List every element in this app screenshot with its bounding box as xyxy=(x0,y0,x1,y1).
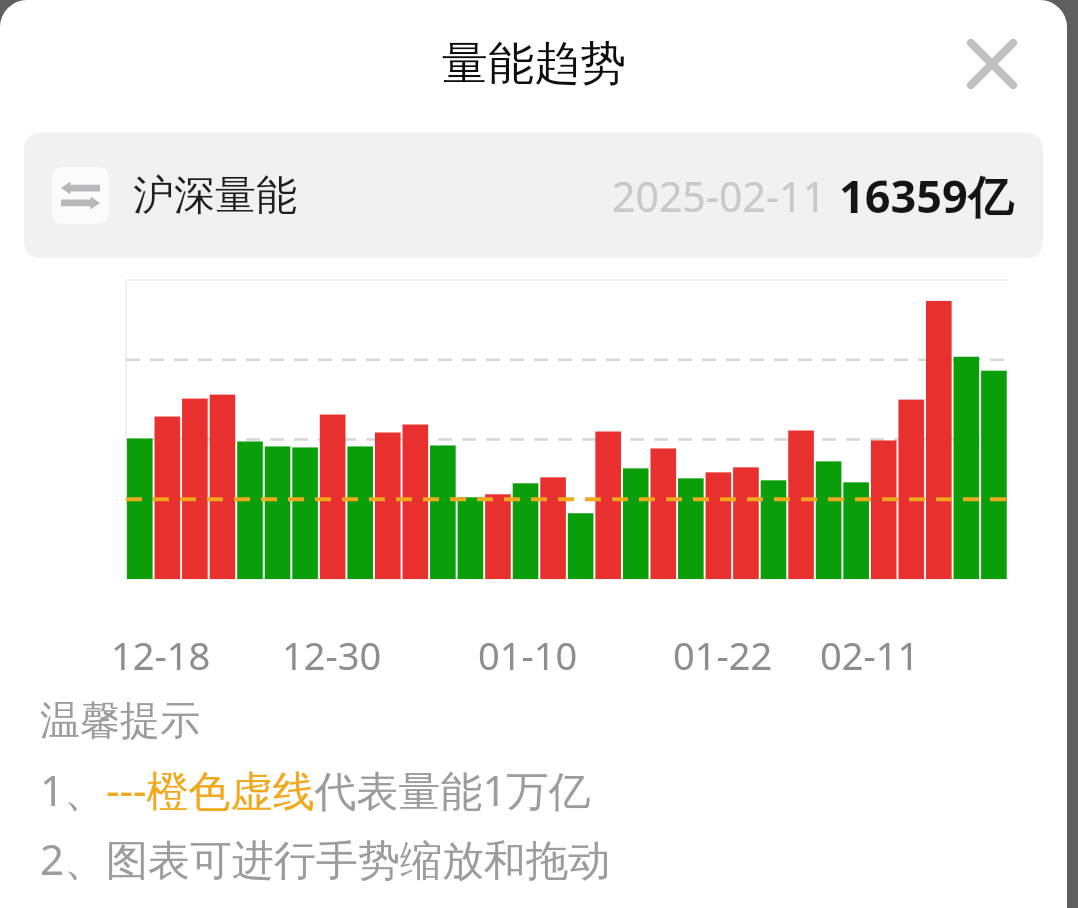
staticText: 01-10 xyxy=(478,629,578,677)
staticText: 沪深量能 xyxy=(133,170,297,222)
staticText: 温馨提示 xyxy=(40,695,200,745)
staticText: 量能趋势 xyxy=(442,35,626,93)
button[interactable]: 沪深量能 xyxy=(24,133,1043,258)
staticText: 2、图表可进行手势缩放和拖动 xyxy=(40,830,611,887)
staticText: 2025-02-11 xyxy=(612,168,827,224)
staticText: 12-18 xyxy=(111,629,211,677)
button[interactable]: Close xyxy=(959,31,1025,97)
staticText: 02-11 xyxy=(820,629,920,677)
staticText: 12-30 xyxy=(282,629,382,677)
staticText: 01-22 xyxy=(673,629,773,677)
staticText: 1、---橙色虚线代表量能1万亿 xyxy=(40,761,591,818)
staticText: 16359亿 xyxy=(839,165,1013,226)
